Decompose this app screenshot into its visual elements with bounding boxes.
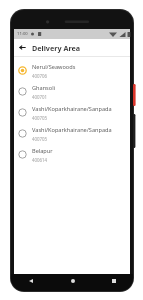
staticText: 400705 [32, 115, 48, 121]
staticText: Vashi/Koparkhairane/Sanpada [32, 105, 112, 113]
button[interactable]: Recent apps [108, 275, 119, 286]
button[interactable]: Back [16, 41, 29, 54]
button[interactable]: Nerul/Seawoods [14, 60, 130, 81]
staticText: 400705 [32, 136, 48, 142]
staticText: Nerul/Seawoods [32, 63, 76, 71]
button[interactable]: Home [67, 275, 78, 286]
staticText: 400701 [32, 94, 48, 100]
staticText: 400614 [32, 157, 48, 163]
button[interactable]: Vashi/Koparkhairane/Sanpada [14, 123, 130, 144]
staticText: Delivery Area [32, 43, 81, 53]
button[interactable]: Vashi/Koparkhairane/Sanpada [14, 102, 130, 123]
staticText: 400706 [32, 73, 48, 79]
staticText: 11:00 [17, 31, 28, 37]
staticText: Belapur [32, 147, 53, 155]
staticText: Vashi/Koparkhairane/Sanpada [32, 126, 112, 134]
staticText: Ghansoli [32, 84, 56, 92]
button[interactable]: Back [25, 275, 36, 286]
button[interactable]: Ghansoli [14, 81, 130, 102]
button[interactable]: Belapur [14, 144, 130, 165]
